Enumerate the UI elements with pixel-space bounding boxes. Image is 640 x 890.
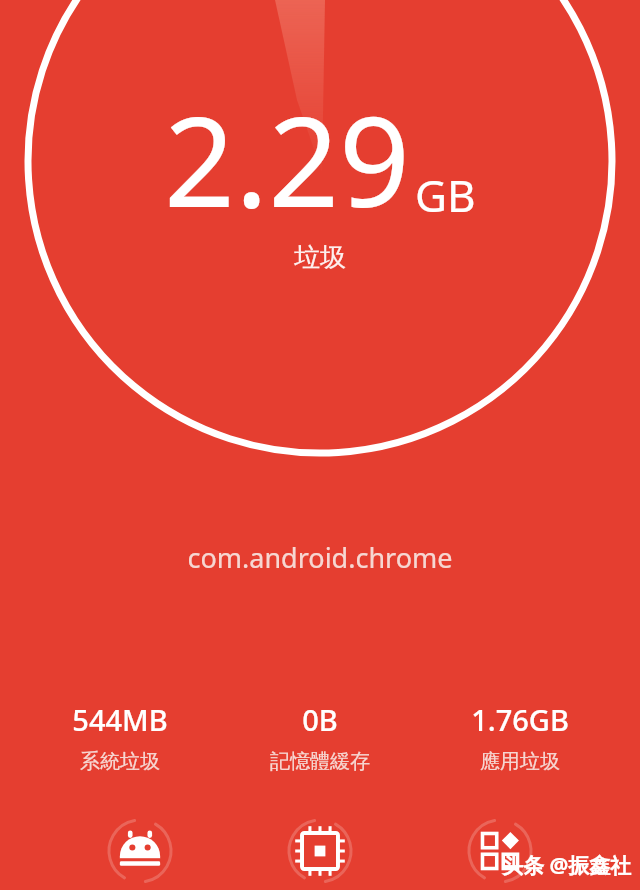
staticText: 2.29 xyxy=(164,74,411,243)
staticText: 記憶體緩存 xyxy=(270,749,370,774)
staticText: GB xyxy=(415,165,476,225)
button[interactable]: 0B xyxy=(258,700,382,774)
button[interactable]: CPU boost xyxy=(280,812,360,890)
button[interactable]: 544MB xyxy=(58,700,182,774)
staticText: 系統垃圾 xyxy=(80,749,160,774)
button[interactable]: Android junk clean xyxy=(100,812,180,890)
staticText: 头条 @振鑫社 xyxy=(502,851,632,880)
staticText: 應用垃圾 xyxy=(480,749,560,774)
staticText: 1.76GB xyxy=(471,700,569,739)
staticText: 544MB xyxy=(72,700,168,739)
staticText: 垃圾 xyxy=(294,241,346,274)
staticText: 0B xyxy=(302,700,338,739)
button[interactable]: 1.76GB xyxy=(458,700,582,774)
staticText: com.android.chrome xyxy=(187,539,453,576)
button[interactable]: App manager xyxy=(460,812,540,890)
